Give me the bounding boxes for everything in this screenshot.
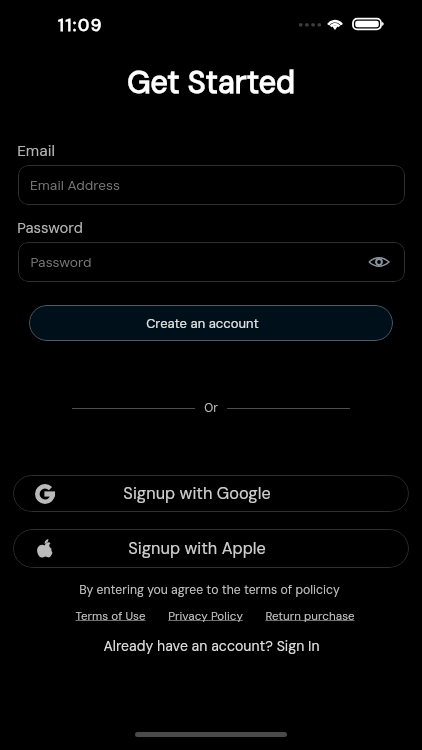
button[interactable]: Privacy Policy — [168, 608, 243, 623]
staticText: Email — [17, 141, 55, 161]
staticText: Or — [204, 400, 218, 416]
button[interactable]: Terms of Use — [75, 608, 146, 623]
staticText: Signup with Google — [123, 483, 271, 504]
button[interactable]: Return purchase — [265, 608, 355, 623]
staticText: Get Started — [127, 63, 295, 103]
button[interactable]: Create an account — [29, 305, 393, 341]
button[interactable]: Already have an account? Sign In — [103, 637, 320, 655]
button[interactable]: Password — [18, 242, 405, 282]
button[interactable]: Show password — [368, 251, 390, 273]
button[interactable]: Signup with Google — [13, 475, 409, 512]
staticText: By entering you agree to the terms of po… — [79, 582, 340, 598]
staticText: Email Address — [30, 176, 120, 194]
staticText: Create an account — [146, 315, 259, 332]
staticText: Password — [17, 218, 83, 237]
button[interactable]: Signup with Apple — [13, 529, 409, 568]
staticText: Signup with Apple — [128, 538, 266, 559]
button[interactable]: Email Address — [18, 165, 405, 205]
staticText: 11:09 — [58, 14, 104, 36]
staticText: Password — [30, 253, 92, 271]
